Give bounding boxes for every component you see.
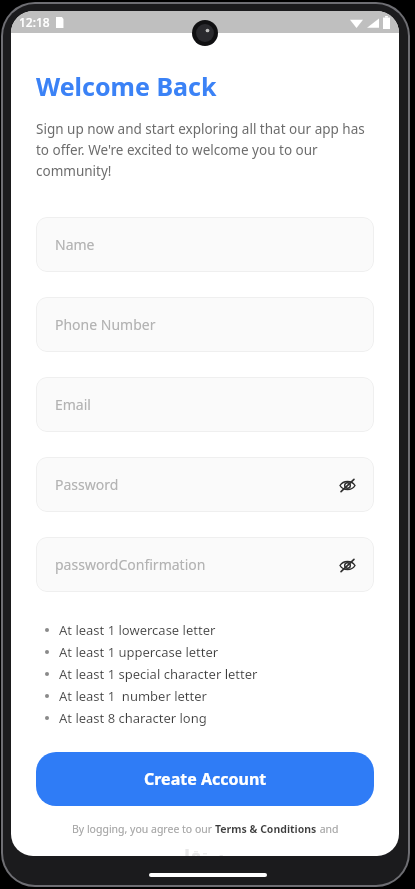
button[interactable]: Toggle password visibility [334,472,360,498]
staticText: Password [55,475,119,494]
staticText: Create Account [144,768,267,790]
staticText: At least 8 character long [59,709,207,727]
staticText: مستقل [176,846,235,856]
button[interactable]: Password [36,457,374,512]
button[interactable]: Create Account [36,752,374,806]
button[interactable]: Terms & Conditions [215,822,317,836]
staticText: By logging, you agree to our [72,822,215,836]
staticText: At least 1 uppercase letter [59,643,219,661]
staticText: At least 1 number letter [59,687,207,705]
staticText: 12:18 [19,14,50,30]
button[interactable]: Name [36,217,374,272]
staticText: At least 1 lowercase letter [59,621,216,639]
staticText: and [317,822,339,836]
button[interactable]: Phone Number [36,297,374,352]
button[interactable]: Toggle password visibility [334,552,360,578]
staticText: Name [55,235,95,254]
staticText: Phone Number [55,315,156,334]
staticText: Terms & Conditions [215,822,317,836]
staticText: Email [55,395,91,414]
staticText: passwordConfirmation [55,555,206,574]
staticText: At least 1 special character letter [59,665,258,683]
staticText: Sign up now and start exploring all that… [36,120,374,180]
staticText: Welcome Back [36,69,217,103]
button[interactable]: passwordConfirmation [36,537,374,592]
button[interactable]: Email [36,377,374,432]
